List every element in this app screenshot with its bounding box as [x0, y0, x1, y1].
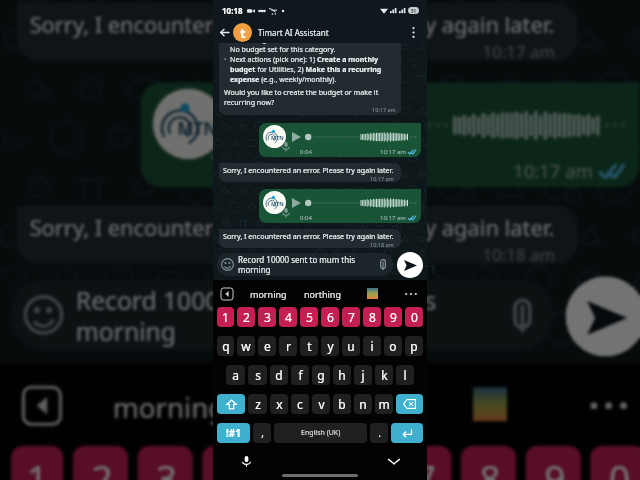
- button[interactable]: z: [248, 394, 267, 414]
- staticText: w: [241, 338, 251, 354]
- button[interactable]: l: [396, 365, 414, 385]
- button[interactable]: Hide keyboard: [386, 454, 401, 469]
- button[interactable]: Clipboard: [219, 286, 235, 302]
- button[interactable]: p: [405, 336, 423, 356]
- staticText: f: [298, 367, 303, 383]
- button[interactable]: 0: [590, 446, 640, 480]
- button[interactable]: 1: [217, 307, 234, 327]
- button[interactable]: j: [354, 365, 372, 385]
- button[interactable]: 3: [258, 307, 276, 327]
- button[interactable]: Attach: [501, 295, 541, 335]
- staticText: Timart AI Assistant: [258, 27, 329, 38]
- staticText: i: [370, 338, 374, 354]
- button[interactable]: 1: [11, 446, 63, 480]
- staticText: u: [347, 338, 355, 354]
- staticText: MTN: [177, 116, 217, 138]
- staticText: ,: [261, 426, 264, 440]
- button[interactable]: 4: [279, 307, 297, 327]
- button[interactable]: .: [370, 423, 388, 443]
- button[interactable]: 2: [73, 446, 128, 480]
- button[interactable]: 7: [396, 446, 451, 480]
- staticText: northing: [279, 387, 393, 424]
- button[interactable]: 6: [321, 307, 339, 327]
- staticText: z: [255, 396, 261, 412]
- staticText: 0:04: [300, 214, 312, 222]
- button[interactable]: Enter: [391, 423, 423, 443]
- button[interactable]: 6: [331, 446, 387, 480]
- button[interactable]: k: [375, 365, 393, 385]
- button[interactable]: 5: [300, 307, 318, 327]
- button[interactable]: g: [312, 365, 330, 385]
- staticText: y: [327, 338, 334, 354]
- staticText: a: [232, 367, 239, 383]
- button[interactable]: c: [291, 394, 309, 414]
- button[interactable]: 5: [267, 446, 322, 480]
- button[interactable]: !#1: [217, 423, 250, 443]
- staticText: t: [307, 338, 312, 354]
- staticText: 10:17 am: [482, 39, 556, 61]
- button[interactable]: w: [237, 336, 255, 356]
- staticText: 8: [369, 309, 376, 325]
- staticText: !#1: [226, 426, 241, 440]
- staticText: 10:18 am: [370, 241, 394, 248]
- button[interactable]: h: [333, 365, 351, 385]
- button[interactable]: x: [270, 394, 288, 414]
- button[interactable]: 3: [137, 446, 193, 480]
- button[interactable]: b: [333, 394, 351, 414]
- button[interactable]: Attach: [376, 258, 389, 271]
- button[interactable]: Clipboard: [17, 381, 67, 430]
- button[interactable]: Send: [397, 252, 423, 278]
- button[interactable]: 9: [525, 446, 581, 480]
- button[interactable]: ,: [253, 423, 271, 443]
- button[interactable]: 2: [237, 307, 255, 327]
- button[interactable]: 0: [405, 307, 423, 327]
- staticText: r: [286, 338, 291, 354]
- button[interactable]: Record 10000 sent to mum this morning: [217, 253, 393, 276]
- button[interactable]: v: [312, 394, 330, 414]
- button[interactable]: u: [342, 336, 360, 356]
- button[interactable]: Backspace: [396, 394, 423, 414]
- staticText: northing: [304, 288, 341, 300]
- button[interactable]: 8: [363, 307, 381, 327]
- button[interactable]: r: [279, 336, 297, 356]
- button[interactable]: i: [363, 336, 381, 356]
- staticText: 9: [390, 309, 397, 325]
- staticText: 0: [411, 309, 418, 325]
- button[interactable]: n: [354, 394, 372, 414]
- staticText: 10:17 am: [380, 214, 406, 222]
- button[interactable]: Send: [565, 276, 640, 356]
- staticText: l: [403, 367, 407, 383]
- staticText: Would you like to create the budget or m…: [224, 87, 396, 107]
- button[interactable]: f: [291, 365, 309, 385]
- button[interactable]: Record 10000 sent to mum this morning: [11, 279, 553, 350]
- button[interactable]: e: [258, 336, 276, 356]
- button[interactable]: 4: [202, 446, 257, 480]
- button[interactable]: English (UK): [274, 423, 367, 443]
- button[interactable]: More options: [404, 23, 422, 41]
- staticText: Quick insight: Utilities this month so f…: [230, 43, 396, 54]
- button[interactable]: a: [226, 365, 245, 385]
- button[interactable]: m: [375, 394, 393, 414]
- button[interactable]: 7: [342, 307, 360, 327]
- staticText: Next actions (pick one): 1) Create a mon…: [230, 54, 396, 84]
- button[interactable]: Back: [216, 24, 232, 40]
- staticText: morning: [113, 387, 227, 424]
- button[interactable]: t: [233, 23, 252, 42]
- button[interactable]: t: [300, 336, 318, 356]
- button[interactable]: o: [384, 336, 402, 356]
- staticText: o: [389, 338, 397, 354]
- button[interactable]: s: [248, 365, 267, 385]
- button[interactable]: 9: [384, 307, 402, 327]
- button[interactable]: q: [217, 336, 234, 356]
- staticText: x: [276, 396, 283, 412]
- button[interactable]: Shift: [217, 394, 245, 414]
- button[interactable]: d: [270, 365, 288, 385]
- button[interactable]: 8: [461, 446, 516, 480]
- staticText: English (UK): [301, 428, 341, 438]
- staticText: 5: [285, 452, 307, 480]
- staticText: 1: [26, 452, 48, 480]
- button[interactable]: y: [321, 336, 339, 356]
- staticText: b: [338, 396, 346, 412]
- button[interactable]: Voice input: [239, 454, 254, 469]
